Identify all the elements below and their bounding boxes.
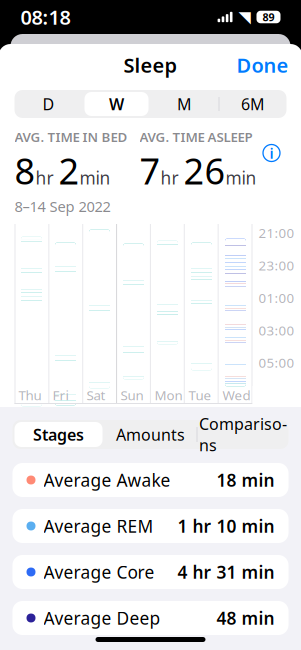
staticText: Sun	[120, 386, 143, 404]
staticText: 21:00	[258, 224, 294, 242]
staticText: min	[225, 166, 256, 189]
staticText: hr	[35, 166, 53, 189]
staticText: 8	[14, 147, 35, 194]
staticText: 89	[262, 10, 274, 24]
staticText: 6M	[241, 93, 265, 115]
staticText: 26	[183, 147, 225, 194]
staticText: Average Awake	[43, 468, 170, 491]
button[interactable]: W	[82, 90, 150, 118]
staticText: M	[177, 93, 192, 115]
staticText: 1 hr 10 min	[177, 514, 274, 537]
staticText: Sat	[86, 386, 105, 404]
staticText: ◥	[238, 8, 250, 26]
staticText: Mon	[154, 386, 182, 404]
staticText: min	[79, 166, 110, 189]
button[interactable]: Comparisons	[196, 420, 288, 449]
staticText: Comparisons	[199, 413, 287, 456]
button[interactable]: Average Awake	[12, 463, 288, 497]
staticText: 7	[139, 147, 160, 194]
staticText: Fri	[52, 386, 68, 404]
staticText: 18 min	[216, 468, 274, 491]
button[interactable]: 6M	[218, 90, 286, 118]
staticText: D	[42, 93, 54, 115]
staticText: Tue	[188, 386, 211, 404]
button[interactable]: D	[14, 90, 82, 118]
staticText: Sleep	[123, 52, 177, 78]
staticText: 08:18	[20, 4, 70, 30]
staticText: 4 hr 31 min	[177, 560, 274, 583]
button[interactable]: Average Deep	[12, 601, 288, 635]
staticText: Average Core	[43, 560, 154, 583]
staticText: 03:00	[258, 321, 294, 339]
staticText: W	[109, 93, 124, 115]
staticText: Done	[236, 52, 288, 78]
staticText: 01:00	[258, 289, 294, 307]
staticText: Thu	[18, 386, 41, 404]
button[interactable]: Done	[222, 44, 301, 86]
staticText: 23:00	[258, 256, 294, 274]
staticText: Amounts	[116, 424, 185, 445]
staticText: Stages	[33, 424, 84, 445]
button[interactable]: Amounts	[104, 420, 196, 449]
staticText: Average REM	[43, 514, 153, 537]
staticText: 8–14 Sep 2022	[14, 196, 110, 216]
button[interactable]: Stages	[12, 420, 104, 449]
staticText: hr	[160, 166, 178, 189]
staticText: AVG. TIME IN BED	[14, 128, 127, 146]
button[interactable]: Average REM	[12, 509, 288, 543]
staticText: 05:00	[258, 354, 294, 371]
staticText: AVG. TIME ASLEEP	[139, 128, 252, 146]
button[interactable]: M	[150, 90, 218, 118]
staticText: Wed	[222, 386, 250, 404]
staticText: 2	[58, 147, 79, 194]
staticText: 48 min	[216, 606, 274, 629]
button[interactable]: About sleep data	[256, 138, 286, 168]
staticText: Average Deep	[43, 606, 160, 629]
staticText: i	[269, 143, 273, 163]
button[interactable]: Average Core	[12, 555, 288, 589]
staticText	[178, 166, 183, 189]
